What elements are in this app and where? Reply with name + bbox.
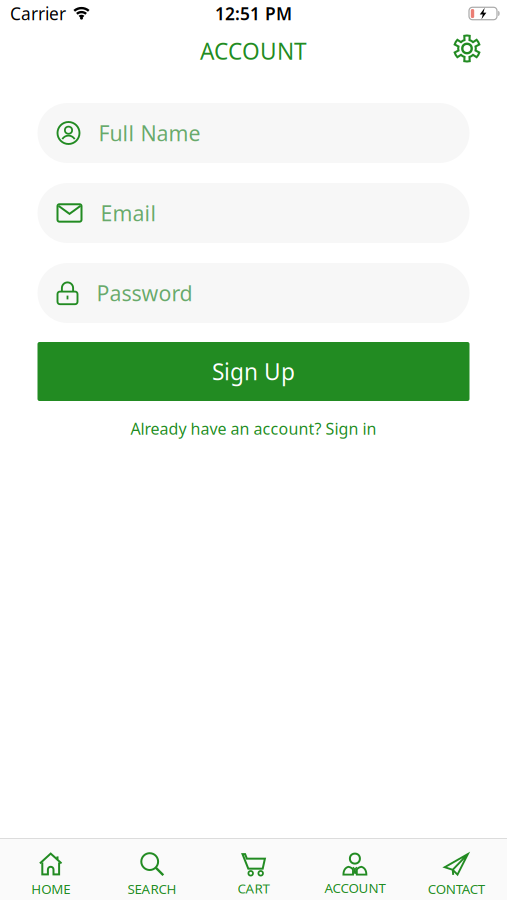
- button[interactable]: Settings: [453, 34, 481, 62]
- button[interactable]: CONTACT: [406, 839, 507, 898]
- staticText: ACCOUNT: [200, 36, 307, 66]
- button[interactable]: Email: [37, 183, 469, 243]
- button[interactable]: HOME: [0, 839, 101, 898]
- button[interactable]: Password: [37, 263, 469, 323]
- staticText: Carrier: [10, 2, 66, 25]
- staticText: CONTACT: [428, 880, 485, 898]
- staticText: SEARCH: [128, 880, 177, 898]
- button[interactable]: Full Name: [37, 103, 469, 163]
- staticText: Full Name: [98, 119, 200, 147]
- staticText: Sign Up: [212, 356, 295, 386]
- staticText: Password: [96, 279, 192, 307]
- staticText: ACCOUNT: [324, 879, 385, 897]
- button[interactable]: CART: [203, 839, 304, 897]
- staticText: 12:51 PM: [215, 2, 292, 25]
- staticText: Already have an account? Sign in: [130, 418, 376, 439]
- staticText: Email: [100, 199, 156, 227]
- button[interactable]: ACCOUNT: [304, 840, 406, 897]
- staticText: HOME: [31, 880, 70, 898]
- button[interactable]: Already have an account? Sign in: [130, 418, 376, 439]
- button[interactable]: Sign Up: [37, 342, 469, 401]
- button[interactable]: SEARCH: [101, 839, 203, 898]
- staticText: CART: [237, 879, 269, 897]
